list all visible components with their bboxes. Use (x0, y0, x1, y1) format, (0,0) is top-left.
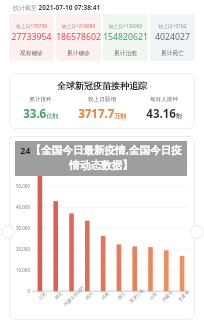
staticText: 27733954 (9, 31, 54, 43)
staticText: 4024027 (150, 31, 195, 43)
button[interactable]: 较上日+218880 (56, 14, 101, 61)
staticText: 较上日+78758 (9, 23, 54, 30)
staticText: 山东 (148, 291, 159, 301)
staticText: 浙江 (116, 291, 127, 301)
staticText: 3717.7万剂 (78, 106, 126, 122)
staticText: 较上日+218880 (56, 23, 101, 30)
staticText: 内蒙古 (161, 289, 175, 303)
staticText: 江苏 (37, 291, 48, 301)
staticText: 湖北 (53, 291, 64, 301)
staticText: 每百人接种 (150, 96, 178, 103)
staticText: 0 (9, 288, 30, 294)
staticText: 累计治愈 (103, 49, 148, 56)
staticText: 40,000 (9, 204, 30, 210)
staticText: 33.6亿剂 (23, 106, 58, 122)
staticText: 四川 (84, 291, 95, 301)
staticText: 较上日+136960 (103, 23, 148, 30)
staticText: 186578602 (56, 31, 101, 43)
staticText: 20,000 (9, 246, 30, 252)
staticText: 累计接种 (29, 96, 52, 103)
staticText: 全球新冠疫苗接种追踪 (9, 80, 195, 91)
staticText: 河南 (100, 291, 111, 301)
staticText: 60,000 (9, 162, 30, 168)
button[interactable]: 较上日+3162 (150, 14, 195, 61)
staticText: 甘肃省 (177, 289, 191, 303)
button[interactable]: 较上日+136960 (103, 14, 148, 61)
staticText: 24【全国今日最新疫情,全国今日疫 情动态数据】 (15, 143, 187, 172)
staticText: 累计死亡 (150, 49, 195, 56)
staticText: 较上日新增 (88, 96, 116, 103)
staticText: 黑龙江省 (129, 288, 146, 305)
button[interactable]: 较上日+78758 (9, 14, 54, 61)
staticText: 统计截至 2021-07-10 07:38:41 (13, 3, 101, 12)
staticText: 内蒙古自治区 (63, 284, 86, 308)
staticText: 154820621 (103, 31, 148, 43)
staticText: 累计确诊 (56, 49, 101, 56)
staticText: 较上日+3162 (150, 23, 195, 30)
staticText: 43.16剂 (146, 106, 182, 122)
staticText: 现有确诊 (9, 49, 54, 56)
staticText: 30,000 (9, 225, 30, 231)
staticText: 10,000 (9, 267, 30, 273)
staticText: 50,000 (9, 183, 30, 189)
